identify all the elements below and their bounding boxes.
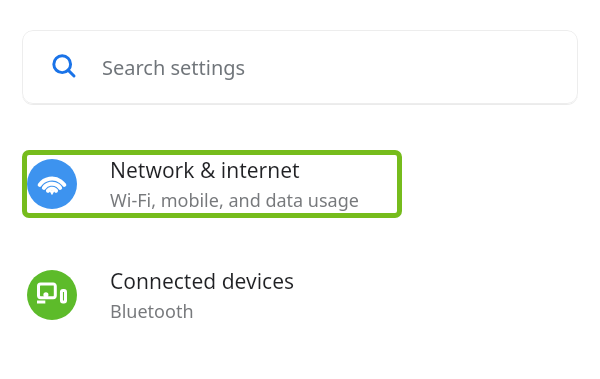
- other: Connected devices: [27, 270, 77, 320]
- button[interactable]: [22, 150, 402, 218]
- button[interactable]: Search: [22, 30, 578, 104]
- other: Network and internet: [27, 159, 77, 209]
- staticText: Bluetooth: [110, 299, 194, 324]
- button[interactable]: Network and internet: [22, 150, 402, 218]
- staticText: Network & internet: [110, 156, 300, 185]
- staticText: Wi-Fi, mobile, and data usage: [110, 188, 359, 213]
- button[interactable]: Connected devices: [22, 261, 402, 329]
- staticText: Connected devices: [110, 267, 295, 296]
- staticText: Search settings: [102, 54, 246, 81]
- other: Search: [51, 53, 79, 81]
